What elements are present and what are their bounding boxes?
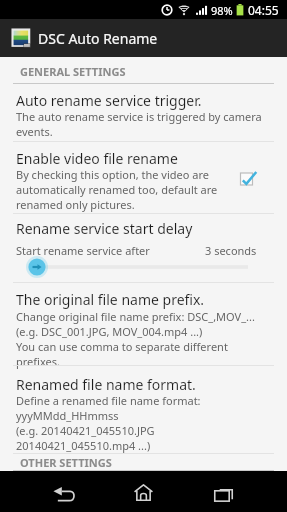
button[interactable] [0,87,287,138]
staticText: Change original file name prefix: DSC_,M… [16,309,255,324]
staticText: 3 seconds [205,243,257,258]
button[interactable]: Recent apps [200,475,247,512]
button[interactable]: Home [120,471,167,512]
staticText: Auto rename service trigger. [16,91,202,110]
button[interactable] [0,145,287,208]
button[interactable] [0,371,287,446]
button[interactable]: Back [39,473,89,512]
staticText: renamed only pictures. [16,197,135,212]
staticText: GENERAL SETTINGS [20,64,126,79]
staticText: Renamed file name format. [16,375,196,394]
staticText: (e.g. 20140421_045510.JPG [16,423,155,438]
staticText: By checking this option, the video are [16,167,209,182]
button[interactable]: Enable video file rename [234,166,260,192]
staticText: Enable video file rename [16,149,178,168]
button[interactable] [0,215,287,279]
button[interactable] [0,286,287,362]
staticText: Rename service start delay [16,219,193,238]
staticText: DSC Auto Rename [38,29,158,48]
staticText: Start rename service after [16,243,150,258]
staticText: events. [16,124,53,139]
staticText: Define a renamed file name format: [16,393,201,408]
staticText: 98% [211,3,233,18]
staticText: You can use comma to separate different [16,339,228,354]
staticText: The original file name prefix. [16,290,205,309]
staticText: The auto rename service is triggered by … [16,109,262,124]
staticText: OTHER SETTINGS [20,455,112,470]
button[interactable]: DSC Auto Rename [0,19,287,57]
staticText: automatically renamed too, default are [16,182,218,197]
staticText: 20140421_045510.mp4 ...) [16,438,151,453]
staticText: (e.g. DSC_001.JPG, MOV_004.mp4 ...) [16,324,203,339]
staticText: prefixes. [16,354,60,369]
staticText: yyyMMdd_HHmmss [16,408,119,423]
staticText: 04:55 [248,2,279,18]
